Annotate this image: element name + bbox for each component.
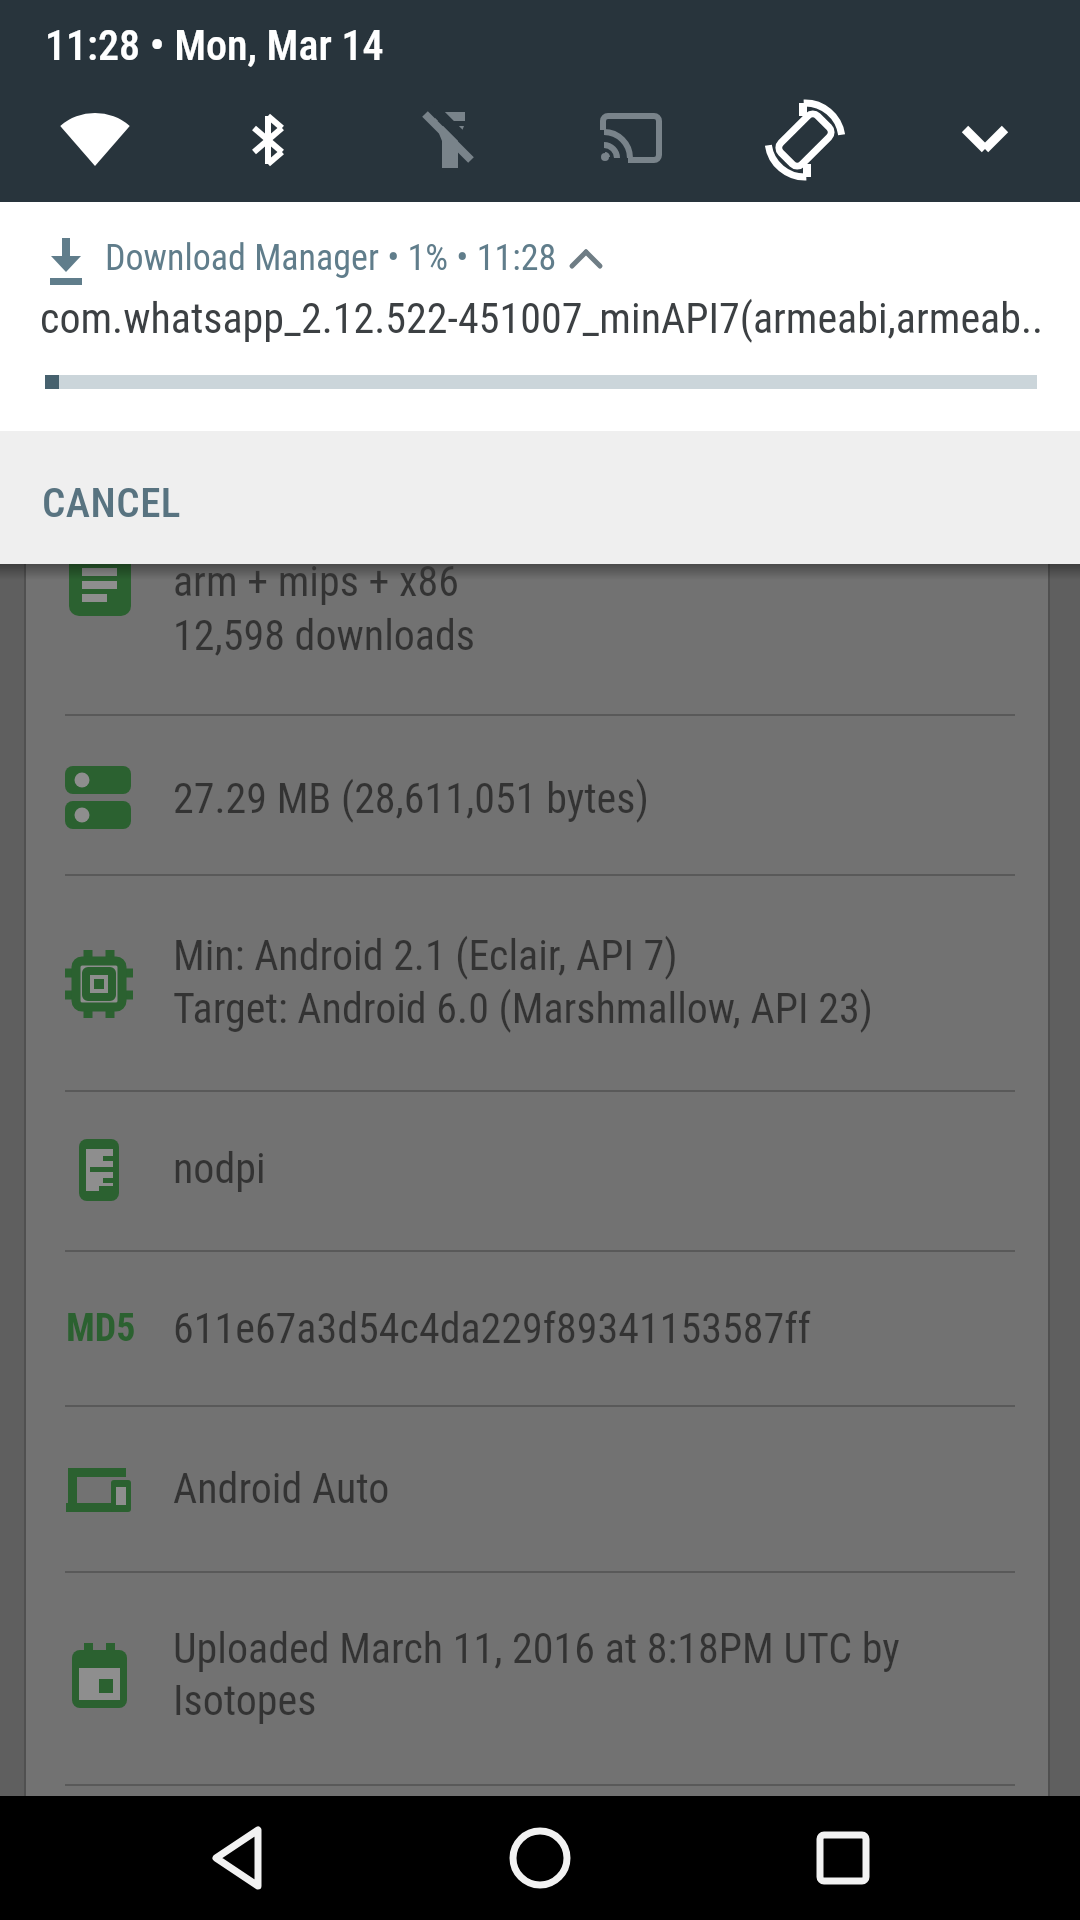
staticText: Download Manager • 1% • 11:28: [105, 237, 557, 279]
button[interactable]: Download Manager • 1% • 11:28: [0, 202, 1080, 431]
button[interactable]: [224, 96, 312, 184]
staticText: arm + mips + x86: [173, 564, 459, 606]
staticText: Target: Android 6.0 (Marshmallow, API 23…: [173, 984, 874, 1033]
staticText: nodpi: [173, 1144, 266, 1193]
staticText: 27.29 MB (28,611,051 bytes): [173, 774, 649, 823]
button[interactable]: CANCEL: [0, 431, 1080, 564]
button[interactable]: [941, 96, 1029, 184]
staticText: MD5: [66, 1306, 136, 1351]
staticText: Uploaded March 11, 2016 at 8:18PM UTC by: [173, 1624, 900, 1673]
button[interactable]: [405, 96, 493, 184]
staticText: 11:28 • Mon, Mar 14: [45, 21, 384, 70]
staticText: CANCEL: [42, 479, 181, 527]
button[interactable]: [784, 1827, 902, 1889]
button[interactable]: [481, 1827, 599, 1889]
button[interactable]: [586, 96, 674, 184]
staticText: com.whatsapp_2.12.522-451007_minAPI7(arm…: [40, 294, 1044, 343]
button[interactable]: [761, 96, 849, 184]
button[interactable]: [51, 96, 139, 184]
staticText: 12,598 downloads: [173, 611, 475, 660]
staticText: Android Auto: [173, 1464, 390, 1513]
staticText: 611e67a3d54c4da229f89341153587ff: [173, 1304, 811, 1353]
staticText: Min: Android 2.1 (Eclair, API 7): [173, 931, 678, 980]
staticText: Isotopes: [173, 1676, 317, 1725]
button[interactable]: [178, 1827, 296, 1889]
